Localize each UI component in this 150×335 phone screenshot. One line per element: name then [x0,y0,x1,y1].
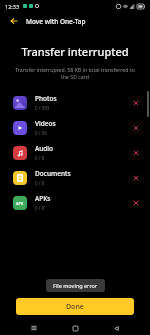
button[interactable]: Photos [0,90,150,115]
button[interactable]: Failed [131,148,141,158]
button[interactable]: Back [109,321,123,335]
button[interactable]: Done [16,298,134,315]
button[interactable]: Videos [0,115,150,140]
staticText: 12:33 [5,3,20,10]
button[interactable]: Failed [131,123,141,133]
button[interactable]: Failed [131,98,141,108]
staticText: File moving error [53,282,98,289]
button[interactable]: Failed [131,198,141,208]
button[interactable]: Failed [131,173,141,183]
staticText: Transfer interrupted. 58 KB in total tra… [13,66,137,81]
button[interactable]: Back [6,13,22,29]
staticText: 0 / 8 [35,205,45,211]
staticText: 0 / 8 [35,180,45,186]
staticText: APKs [35,194,51,203]
button[interactable]: Recents [27,321,41,335]
staticText: Photos [35,94,57,103]
staticText: Documents [35,169,71,178]
button[interactable]: Home [68,321,82,335]
staticText: 0 / 393 [35,105,50,111]
staticText: Videos [35,119,56,128]
staticText: 0 / 36 [35,130,47,136]
staticText: Audio [35,144,54,153]
staticText: Transfer interrupted [0,44,150,59]
staticText: Done [66,302,84,312]
button[interactable]: Audio [0,140,150,165]
button[interactable]: APK [0,190,150,215]
staticText: APK [16,201,24,206]
button[interactable]: Documents [0,165,150,190]
staticText: 0 / 8 [35,155,45,161]
staticText: Move with One-Tap [26,17,86,26]
